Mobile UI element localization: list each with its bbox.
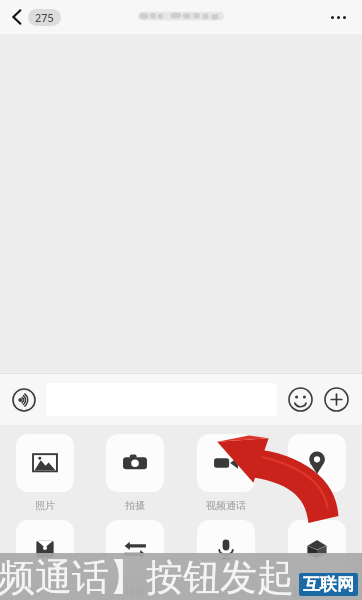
staticText: 我的小程序 <box>292 585 342 598</box>
staticText: 位置 <box>307 499 327 512</box>
staticText: 视频通话 <box>206 499 246 512</box>
staticText: 频通话】按钮发起 <box>0 554 294 600</box>
button[interactable]: Voice message <box>8 384 40 416</box>
button[interactable]: 红包 <box>0 520 90 598</box>
staticText: 互联网 <box>303 574 354 595</box>
button[interactable]: 视频通话 <box>180 434 271 512</box>
button[interactable]: 位置 <box>271 434 362 512</box>
button[interactable]: Back, 275 unread <box>8 5 64 29</box>
staticText: 语音输入 <box>206 585 246 598</box>
button[interactable]: 语音输入 <box>180 520 271 598</box>
staticText: 275 <box>35 10 54 25</box>
button[interactable]: Emoji <box>285 384 316 415</box>
staticText: 红包 <box>35 585 55 598</box>
button[interactable]: 拍摄 <box>90 434 180 512</box>
staticText: 照片 <box>35 499 55 512</box>
button[interactable]: More functions <box>321 384 352 415</box>
staticText: 拍摄 <box>125 499 145 512</box>
button[interactable]: 照片 <box>0 434 90 512</box>
button[interactable]: More options <box>325 10 352 25</box>
button[interactable]: 转账 <box>90 520 180 598</box>
button[interactable]: 我的小程序 <box>271 520 362 598</box>
